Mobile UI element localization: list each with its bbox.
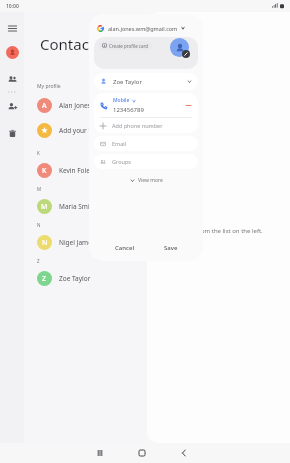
staticText: My profile bbox=[37, 83, 61, 90]
staticText: A bbox=[42, 101, 47, 111]
staticText: 10:00 bbox=[6, 3, 19, 10]
button[interactable]: Add phone number bbox=[94, 118, 198, 133]
staticText: Kevin Foley bbox=[59, 166, 94, 175]
staticText: Maria Smith bbox=[59, 202, 96, 211]
staticText: K bbox=[37, 150, 40, 156]
button[interactable]: Cancel bbox=[109, 241, 141, 255]
button[interactable]: M bbox=[24, 194, 146, 219]
staticText: View more bbox=[138, 177, 163, 184]
staticText: Save bbox=[164, 244, 178, 252]
staticText: M bbox=[41, 202, 48, 212]
button[interactable]: alan.jones.wm@gmail.com bbox=[89, 21, 203, 35]
staticText: Cancel bbox=[115, 244, 135, 252]
button[interactable]: Add your favourites bbox=[24, 118, 146, 143]
button[interactable]: Create profile card bbox=[99, 41, 152, 50]
staticText: Z bbox=[42, 274, 47, 284]
staticText: Select a contact from the list on the le… bbox=[151, 227, 263, 235]
staticText: Add your favourites bbox=[59, 126, 120, 135]
button[interactable]: Zoe Taylor bbox=[94, 73, 198, 90]
staticText: Groups bbox=[112, 158, 131, 165]
staticText: Mobile bbox=[113, 97, 130, 104]
staticText: alan.jones.wm@gmail.com bbox=[108, 25, 178, 32]
staticText: Add phone number bbox=[112, 122, 163, 129]
button[interactable]: Back bbox=[177, 446, 191, 460]
staticText: Contacts bbox=[40, 34, 102, 54]
button[interactable]: Recents bbox=[93, 446, 107, 460]
button[interactable]: Remove bbox=[184, 101, 192, 109]
staticText: 123456789 bbox=[113, 106, 144, 114]
button[interactable]: Email bbox=[94, 136, 198, 151]
button[interactable]: K bbox=[24, 158, 146, 183]
staticText: M bbox=[37, 186, 42, 192]
staticText: Create profile card bbox=[109, 43, 149, 49]
button[interactable]: A bbox=[24, 93, 146, 118]
staticText: Nigel Jameson bbox=[59, 238, 103, 247]
staticText: K bbox=[42, 166, 47, 176]
button[interactable]: View more bbox=[89, 174, 203, 186]
button[interactable]: Groups bbox=[94, 154, 198, 169]
button[interactable]: Change photo bbox=[170, 38, 189, 57]
staticText: Z bbox=[37, 258, 40, 264]
staticText: Zoe Taylor bbox=[59, 274, 91, 283]
button[interactable]: Save bbox=[158, 241, 184, 255]
button[interactable]: Trash bbox=[4, 125, 20, 141]
staticText: Alan Jones bbox=[59, 101, 91, 110]
staticText: Zoe Taylor bbox=[113, 78, 142, 86]
staticText: Email bbox=[112, 140, 127, 147]
staticText: N bbox=[42, 238, 48, 248]
button[interactable]: Menu bbox=[4, 20, 20, 36]
button[interactable]: Profile bbox=[6, 46, 19, 59]
button[interactable]: N bbox=[24, 230, 146, 255]
button[interactable]: Add contact bbox=[4, 98, 20, 114]
button[interactable]: Home bbox=[135, 446, 149, 460]
button[interactable]: Z bbox=[24, 266, 146, 291]
button[interactable]: Contacts bbox=[4, 71, 20, 87]
staticText: N bbox=[37, 222, 41, 228]
